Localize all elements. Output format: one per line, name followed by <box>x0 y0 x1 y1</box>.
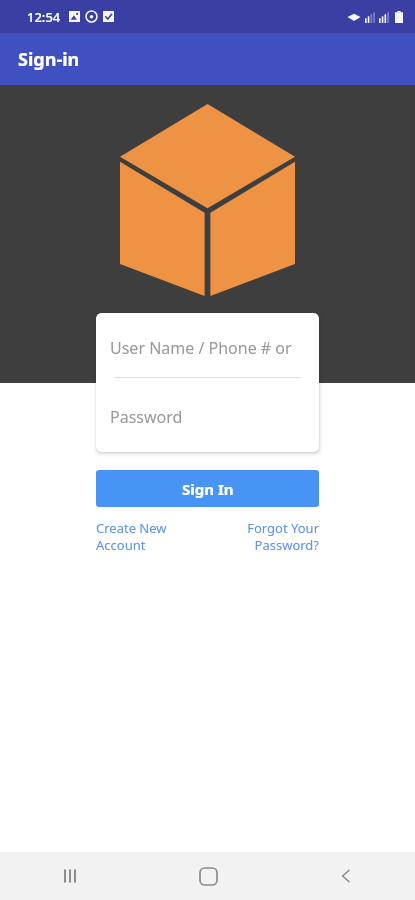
button[interactable]: Forgot Your Password? <box>224 519 319 554</box>
button[interactable]: Home <box>139 852 277 900</box>
button[interactable]: User Name / Phone # or <box>96 313 319 382</box>
staticText: Sign-in <box>18 47 80 72</box>
staticText: Create New Account <box>96 519 191 554</box>
button[interactable]: Recent apps <box>0 852 139 900</box>
button[interactable]: Back <box>277 852 415 900</box>
button[interactable]: Create New Account <box>96 519 191 554</box>
staticText: 12:54 <box>27 8 61 26</box>
button[interactable]: Sign In <box>96 470 319 507</box>
staticText: Sign In <box>182 479 234 499</box>
button[interactable]: Password <box>96 382 319 452</box>
staticText: Forgot Your Password? <box>224 519 319 554</box>
staticText: User Name / Phone # or <box>110 337 292 359</box>
staticText: Password <box>110 406 183 428</box>
